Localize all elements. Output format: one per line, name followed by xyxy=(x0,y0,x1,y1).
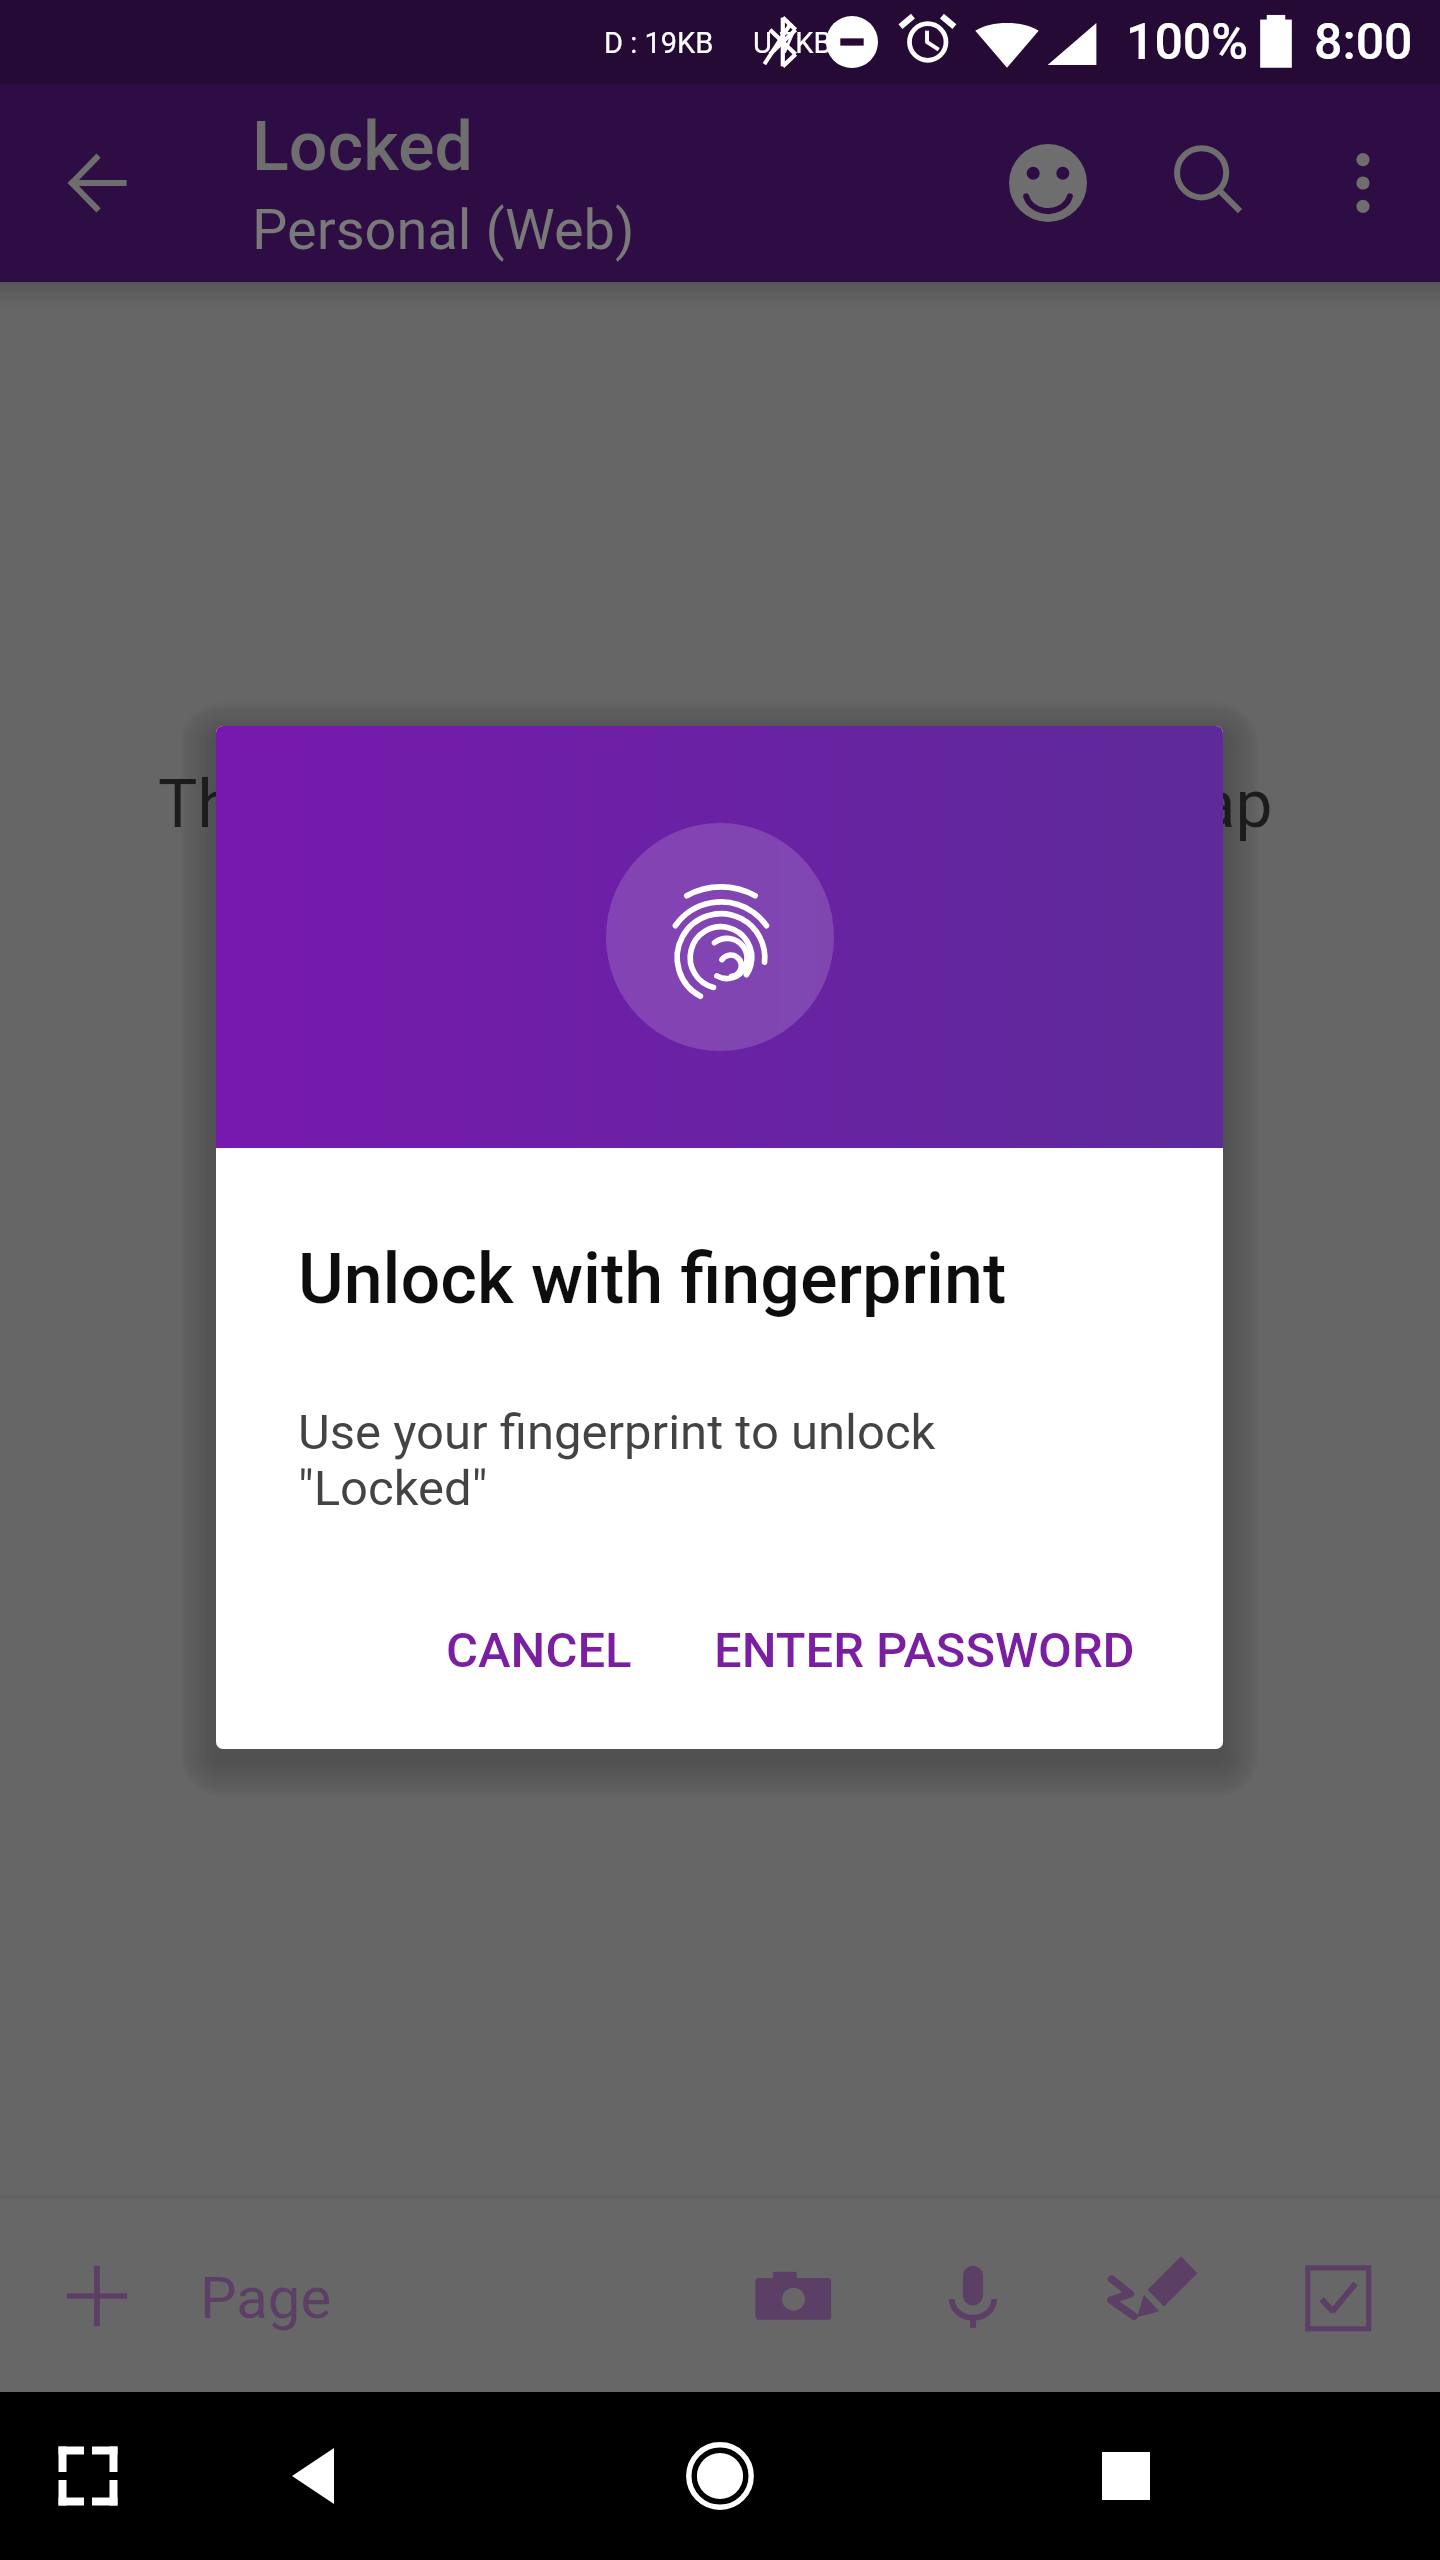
button[interactable]: Screenshot xyxy=(38,2426,138,2526)
button[interactable]: Checklist xyxy=(1285,2243,1391,2349)
staticText: Personal (Web) xyxy=(252,197,635,263)
button[interactable]: Emoji xyxy=(988,123,1108,243)
staticText: 8:00 xyxy=(1314,13,1413,72)
button[interactable]: Camera xyxy=(740,2243,846,2349)
staticText: Use your fingerprint to unlock "Locked" xyxy=(298,1404,936,1517)
button[interactable]: Recents xyxy=(1076,2426,1176,2526)
staticText: Locked xyxy=(252,107,473,187)
staticText: 100% xyxy=(1126,13,1248,72)
button[interactable]: ENTER PASSWORD xyxy=(686,1596,1163,1705)
button[interactable]: Search xyxy=(1147,123,1267,243)
staticText: U 7KB xyxy=(753,26,832,60)
staticText: D : 19KB xyxy=(604,26,714,60)
staticText: Page xyxy=(200,2264,332,2332)
staticText: This note is locked. To unlock this, tap xyxy=(158,766,1273,843)
button[interactable]: Voice xyxy=(920,2243,1026,2349)
staticText: ENTER PASSWORD xyxy=(714,1622,1135,1679)
button[interactable]: Add page xyxy=(42,2241,152,2351)
button[interactable]: CANCEL xyxy=(418,1596,660,1705)
button[interactable]: More options xyxy=(1303,123,1423,243)
button[interactable]: Home xyxy=(668,2424,772,2528)
staticText: CANCEL xyxy=(446,1622,632,1679)
staticText: Unlock with fingerprint xyxy=(298,1238,1007,1320)
button[interactable]: Back xyxy=(266,2426,366,2526)
button[interactable]: Back xyxy=(42,126,156,240)
button[interactable]: Draw xyxy=(1102,2243,1208,2349)
